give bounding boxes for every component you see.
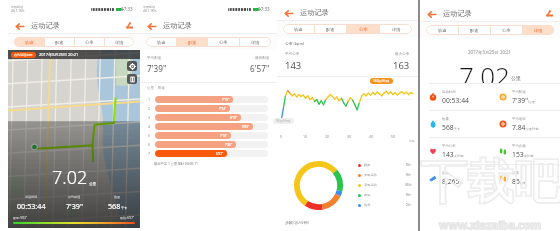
staticText: 步数	[442, 171, 449, 175]
button[interactable]: 心率	[347, 24, 379, 34]
staticText: 7'15"	[222, 98, 230, 102]
button[interactable]: 轨迹	[426, 25, 458, 35]
staticText: 55次/分钟	[276, 119, 291, 123]
staticText: 3	[148, 115, 151, 120]
staticText: 20	[325, 134, 330, 139]
button[interactable]: Share	[544, 8, 555, 19]
button[interactable]: 轨迹	[146, 37, 176, 47]
staticText: 步频 (步/分钟)	[285, 220, 309, 225]
staticText: 平均心率	[442, 144, 456, 148]
staticText: 7.02	[52, 165, 88, 190]
staticText: 6	[148, 142, 151, 147]
staticText: 无氧运动	[364, 173, 377, 177]
staticText: 7.84	[512, 123, 526, 132]
button[interactable]: 详情	[523, 25, 554, 35]
staticText: 详情	[392, 27, 401, 32]
staticText: 1	[148, 97, 151, 102]
staticText: 步	[460, 181, 463, 185]
staticText: 153	[512, 150, 524, 159]
staticText: 热量	[442, 117, 449, 121]
staticText: 公里/小时	[526, 127, 539, 131]
staticText: www.xiazaiba.com	[439, 217, 542, 231]
button[interactable]: Back	[426, 7, 437, 21]
staticText: 9分	[406, 173, 412, 177]
staticText: 7'39"	[66, 201, 83, 211]
staticText: 千卡	[454, 127, 460, 131]
button[interactable]: 配速	[177, 37, 207, 47]
staticText: 步幅	[512, 171, 519, 175]
button[interactable]: 详情	[105, 37, 134, 47]
button[interactable]: 心率	[75, 37, 104, 47]
button[interactable]: 详情	[380, 24, 412, 34]
button[interactable]: 配速	[315, 24, 346, 34]
staticText: 平均配速	[147, 56, 162, 61]
button[interactable]: 心率	[208, 37, 239, 47]
staticText: 33分	[405, 183, 412, 187]
staticText: 配速	[158, 86, 165, 90]
staticText: 心率	[85, 40, 94, 45]
staticText: 详情	[534, 28, 543, 33]
staticText: 运动记录	[31, 21, 60, 30]
staticText: 4	[148, 124, 151, 129]
staticText: 2分	[406, 203, 412, 207]
staticText: 7'39"	[147, 63, 167, 74]
staticText: 平均配速	[68, 195, 81, 199]
staticText: 0分	[406, 163, 412, 167]
staticText: 30	[347, 134, 352, 139]
staticText: 配速	[470, 28, 479, 33]
button[interactable]: 配速	[45, 37, 74, 47]
staticText: 7'39"	[512, 96, 528, 105]
staticText: 运动时间	[25, 195, 38, 199]
button[interactable]: Back	[146, 19, 157, 33]
staticText: 公里	[89, 182, 97, 187]
staticText: 7'34"	[219, 107, 227, 111]
staticText: 最后不足 1 公里用时 00:00:11	[154, 161, 198, 166]
staticText: 7'15"	[220, 134, 228, 138]
staticText: 7	[148, 151, 151, 156]
staticText: 163次/分钟	[373, 79, 390, 83]
button[interactable]: Back	[283, 6, 294, 20]
staticText: 2017年5月25日 20:21	[468, 49, 512, 55]
staticText: 下载吧	[420, 153, 560, 212]
staticText: 17:33	[258, 6, 270, 12]
staticText: 9'03"	[242, 125, 250, 129]
staticText: 运动记录	[163, 21, 192, 30]
staticText: 4G 1.1K/s	[11, 9, 25, 13]
staticText: 163	[393, 59, 410, 72]
button[interactable]: 心率	[491, 25, 522, 35]
staticText: 有氧运动	[364, 183, 377, 187]
staticText: 7'46"	[225, 143, 233, 147]
staticText: 40	[369, 134, 374, 139]
staticText: 千卡	[121, 206, 127, 210]
staticText: 平均速度	[512, 117, 526, 121]
button[interactable]: Back	[14, 19, 25, 33]
button[interactable]: Layers	[127, 74, 137, 84]
staticText: 中国移动	[143, 5, 155, 9]
staticText: 运动记录	[300, 8, 329, 17]
staticText: 568	[108, 201, 121, 211]
staticText: 公里	[147, 86, 154, 90]
staticText: 平均心率	[285, 52, 300, 57]
staticText: 极限	[364, 163, 371, 167]
button[interactable]: Share	[124, 20, 135, 31]
staticText: 分钟	[409, 139, 415, 143]
staticText: 5	[148, 133, 151, 138]
staticText: 2	[148, 106, 151, 111]
staticText: 17:33	[121, 6, 133, 12]
button[interactable]: Locate	[127, 61, 137, 71]
staticText: 详情	[251, 40, 260, 45]
staticText: 轨迹	[25, 40, 34, 45]
staticText: 步/分钟	[524, 154, 534, 158]
staticText: 自为运动记录	[14, 53, 33, 57]
staticText: 热身	[364, 203, 371, 207]
button[interactable]: 轨迹	[14, 37, 44, 47]
staticText: 7.02	[459, 58, 510, 83]
staticText: 配速	[55, 40, 64, 45]
button[interactable]: 详情	[240, 37, 271, 47]
staticText: 85	[512, 177, 520, 186]
button[interactable]: 配速	[459, 25, 490, 35]
staticText: 00:53:44	[442, 96, 469, 105]
staticText: 最慢: 9'03"	[13, 216, 28, 220]
button[interactable]: 轨迹	[283, 24, 314, 34]
staticText: 轨迹	[294, 27, 303, 32]
